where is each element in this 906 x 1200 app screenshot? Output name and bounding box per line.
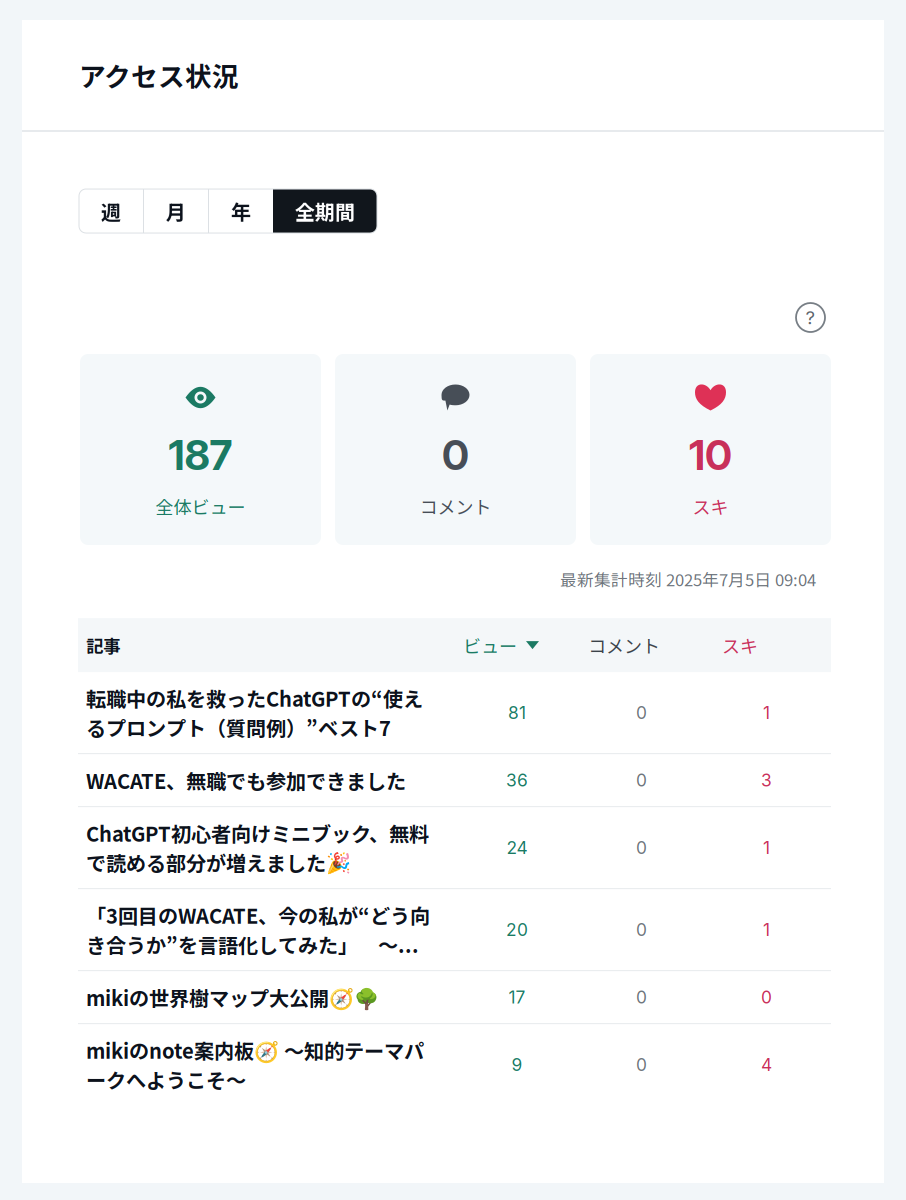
- staticText: 年: [231, 196, 251, 225]
- staticText: アクセス状況: [79, 56, 239, 94]
- staticText: 「3回目のWACATE、今の私が“どう向: [86, 900, 430, 930]
- button[interactable]: 週: [79, 189, 143, 233]
- staticText: 17: [508, 987, 525, 1008]
- staticText: WACATE、無職でも参加できました: [86, 766, 406, 795]
- staticText: 0: [636, 1054, 647, 1075]
- staticText: 1: [763, 919, 770, 940]
- staticText: 20: [506, 919, 528, 940]
- button[interactable]: 「3回目のWACATE、今の私が“どう向: [78, 889, 831, 970]
- staticText: 最新集計時刻 2025年7月5日 09:04: [560, 567, 816, 591]
- staticText: スキ: [722, 632, 758, 658]
- staticText: 1: [763, 702, 770, 723]
- staticText: 週: [101, 196, 121, 225]
- staticText: 転職中の私を救ったChatGPTの“使え: [86, 683, 423, 713]
- button[interactable]: ヘルプ: [796, 303, 825, 332]
- staticText: 10: [689, 430, 732, 480]
- button[interactable]: mikiのnote案内板🧭 〜知的テーマパ: [78, 1024, 831, 1105]
- staticText: mikiのnote案内板🧭 〜知的テーマパ: [86, 1035, 424, 1065]
- staticText: 3: [761, 770, 772, 791]
- staticText: 81: [508, 702, 526, 723]
- staticText: 4: [761, 1054, 772, 1075]
- staticText: るプロンプト（質問例）”ベスト7: [86, 713, 391, 742]
- staticText: コメント: [419, 493, 491, 519]
- staticText: 0: [636, 987, 647, 1008]
- staticText: ?: [805, 306, 815, 329]
- staticText: 全期間: [295, 196, 355, 225]
- button[interactable]: mikiの世界樹マップ大公開🧭🌳: [78, 971, 831, 1023]
- staticText: ビュー: [463, 632, 517, 658]
- staticText: 0: [442, 430, 469, 480]
- staticText: 記事: [86, 633, 120, 658]
- staticText: ークへようこそ〜: [86, 1065, 246, 1094]
- staticText: コメント: [588, 632, 660, 658]
- staticText: ChatGPT初心者向けミニブック、無料: [86, 818, 429, 848]
- button[interactable]: 全期間: [273, 189, 377, 233]
- staticText: で読める部分が増えました🎉: [86, 848, 351, 877]
- button[interactable]: 転職中の私を救ったChatGPTの“使え: [78, 672, 831, 753]
- staticText: 0: [636, 770, 647, 791]
- staticText: 全体ビュー: [155, 493, 245, 519]
- staticText: 0: [636, 702, 647, 723]
- staticText: 0: [636, 837, 647, 858]
- button[interactable]: 年: [209, 189, 273, 233]
- staticText: 0: [761, 987, 772, 1008]
- staticText: 187: [168, 430, 232, 480]
- staticText: き合うか”を言語化してみた」 〜...: [86, 930, 419, 959]
- button[interactable]: 月: [144, 189, 208, 233]
- staticText: 0: [636, 919, 647, 940]
- staticText: スキ: [692, 493, 728, 519]
- staticText: 9: [511, 1054, 522, 1075]
- button[interactable]: ChatGPT初心者向けミニブック、無料: [78, 807, 831, 888]
- staticText: mikiの世界樹マップ大公開🧭🌳: [86, 983, 379, 1012]
- staticText: 36: [506, 770, 528, 791]
- staticText: 24: [506, 837, 527, 858]
- staticText: 月: [166, 196, 186, 225]
- staticText: 1: [763, 837, 770, 858]
- button[interactable]: WACATE、無職でも参加できました: [78, 754, 831, 806]
